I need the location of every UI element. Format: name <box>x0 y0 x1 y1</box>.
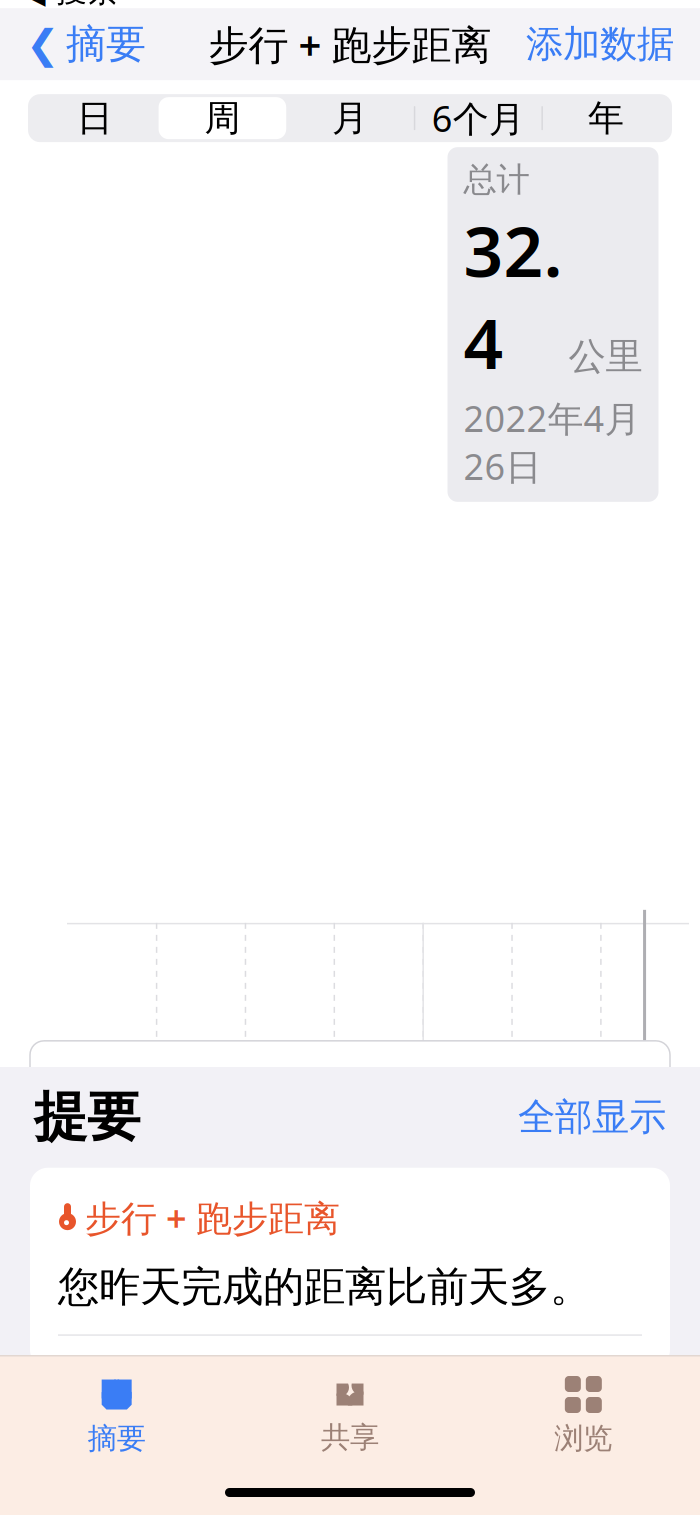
button[interactable]: 年 <box>541 97 669 139</box>
staticText: 您昨天完成的距离比前天多。 <box>58 1262 591 1312</box>
staticText: 周一 <box>521 1397 591 1439</box>
button[interactable]: 浏览 <box>467 1370 700 1460</box>
staticText: 摘要 <box>66 20 146 69</box>
staticText: 趋势 <box>56 1067 130 1113</box>
staticText: 周 <box>204 96 240 140</box>
staticText: 步行 + 跑步距离 <box>208 18 491 71</box>
staticText: 摘要 <box>88 1420 146 1456</box>
staticText: 32.4 <box>463 204 562 388</box>
staticText: 32.4 <box>58 1352 191 1440</box>
button[interactable]: 摘要 <box>0 1370 233 1460</box>
staticText: 年 <box>588 96 624 140</box>
staticText: 月 <box>332 96 368 140</box>
staticText: 步行 + 跑步距离 <box>85 1194 340 1242</box>
staticText: 不可用 <box>533 1067 644 1113</box>
button[interactable]: 共享 <box>233 1371 467 1459</box>
staticText: 浏览 <box>554 1420 612 1456</box>
staticText: ❮ <box>26 21 60 67</box>
staticText: 共享 <box>321 1419 379 1455</box>
button[interactable]: 6个月 <box>414 97 541 139</box>
staticText: 全部显示 <box>518 1094 666 1140</box>
staticText: 2022年4月26日 <box>463 394 640 490</box>
button[interactable]: 日 <box>31 97 159 139</box>
button[interactable]: 趋势 <box>30 1041 670 1139</box>
staticText: 周六 <box>343 1397 413 1439</box>
staticText: 公里 <box>568 334 642 380</box>
button[interactable]: 添加数据 <box>512 11 688 77</box>
staticText: 总计 <box>463 159 529 200</box>
staticText: 6个月 <box>432 94 525 142</box>
staticText: ◀ 搜索 <box>22 0 118 10</box>
staticText: 提要 <box>34 1084 140 1150</box>
button[interactable]: 周 <box>159 97 286 139</box>
button[interactable]: 月 <box>286 97 414 139</box>
button[interactable]: ❮ <box>12 10 160 79</box>
staticText: 周三 <box>76 1397 146 1439</box>
staticText: 日 <box>77 96 113 140</box>
staticText: 添加数据 <box>526 21 674 67</box>
button[interactable]: 全部显示 <box>518 1088 666 1146</box>
